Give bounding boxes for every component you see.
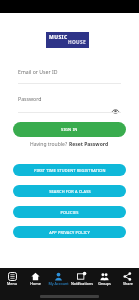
staticText: POLICIES: [60, 210, 79, 215]
staticText: Having trouble?: [30, 141, 69, 148]
staticText: SEARCH FOR A CLASS: [49, 189, 91, 194]
staticText: Menu: [7, 281, 17, 286]
staticText: Home: [30, 281, 41, 286]
button[interactable]: FIRST TIME STUDENT REGISTRATION: [13, 164, 126, 176]
button[interactable]: Home: [24, 268, 47, 300]
staticText: Notifications: [71, 281, 93, 286]
button[interactable]: Menu: [0, 268, 24, 300]
staticText: Email or User ID: [18, 68, 58, 75]
button[interactable]: POLICIES: [13, 206, 126, 218]
staticText: MUSIC: [49, 34, 68, 41]
button[interactable]: SEARCH FOR A CLASS: [13, 185, 126, 197]
staticText: FIRST TIME STUDENT REGISTRATION: [34, 168, 106, 173]
button[interactable]: Share: [116, 268, 139, 300]
button[interactable]: Reset Password: [69, 141, 109, 148]
staticText: Share: [123, 281, 133, 286]
staticText: Password: [18, 95, 42, 102]
staticText: My Account: [48, 281, 69, 286]
button[interactable]: My Account: [47, 268, 70, 300]
button[interactable]: Show password: [107, 103, 123, 119]
button[interactable]: SIGN IN: [13, 122, 126, 137]
button[interactable]: APP PRIVACY POLICY: [13, 226, 126, 238]
staticText: APP PRIVACY POLICY: [49, 230, 90, 235]
staticText: Reset Password: [69, 141, 109, 148]
button[interactable]: Notifications: [70, 268, 93, 300]
staticText: HOUSE: [68, 39, 86, 46]
button[interactable]: Groups: [93, 268, 116, 300]
staticText: SIGN IN: [61, 127, 78, 132]
staticText: Groups: [98, 281, 111, 286]
